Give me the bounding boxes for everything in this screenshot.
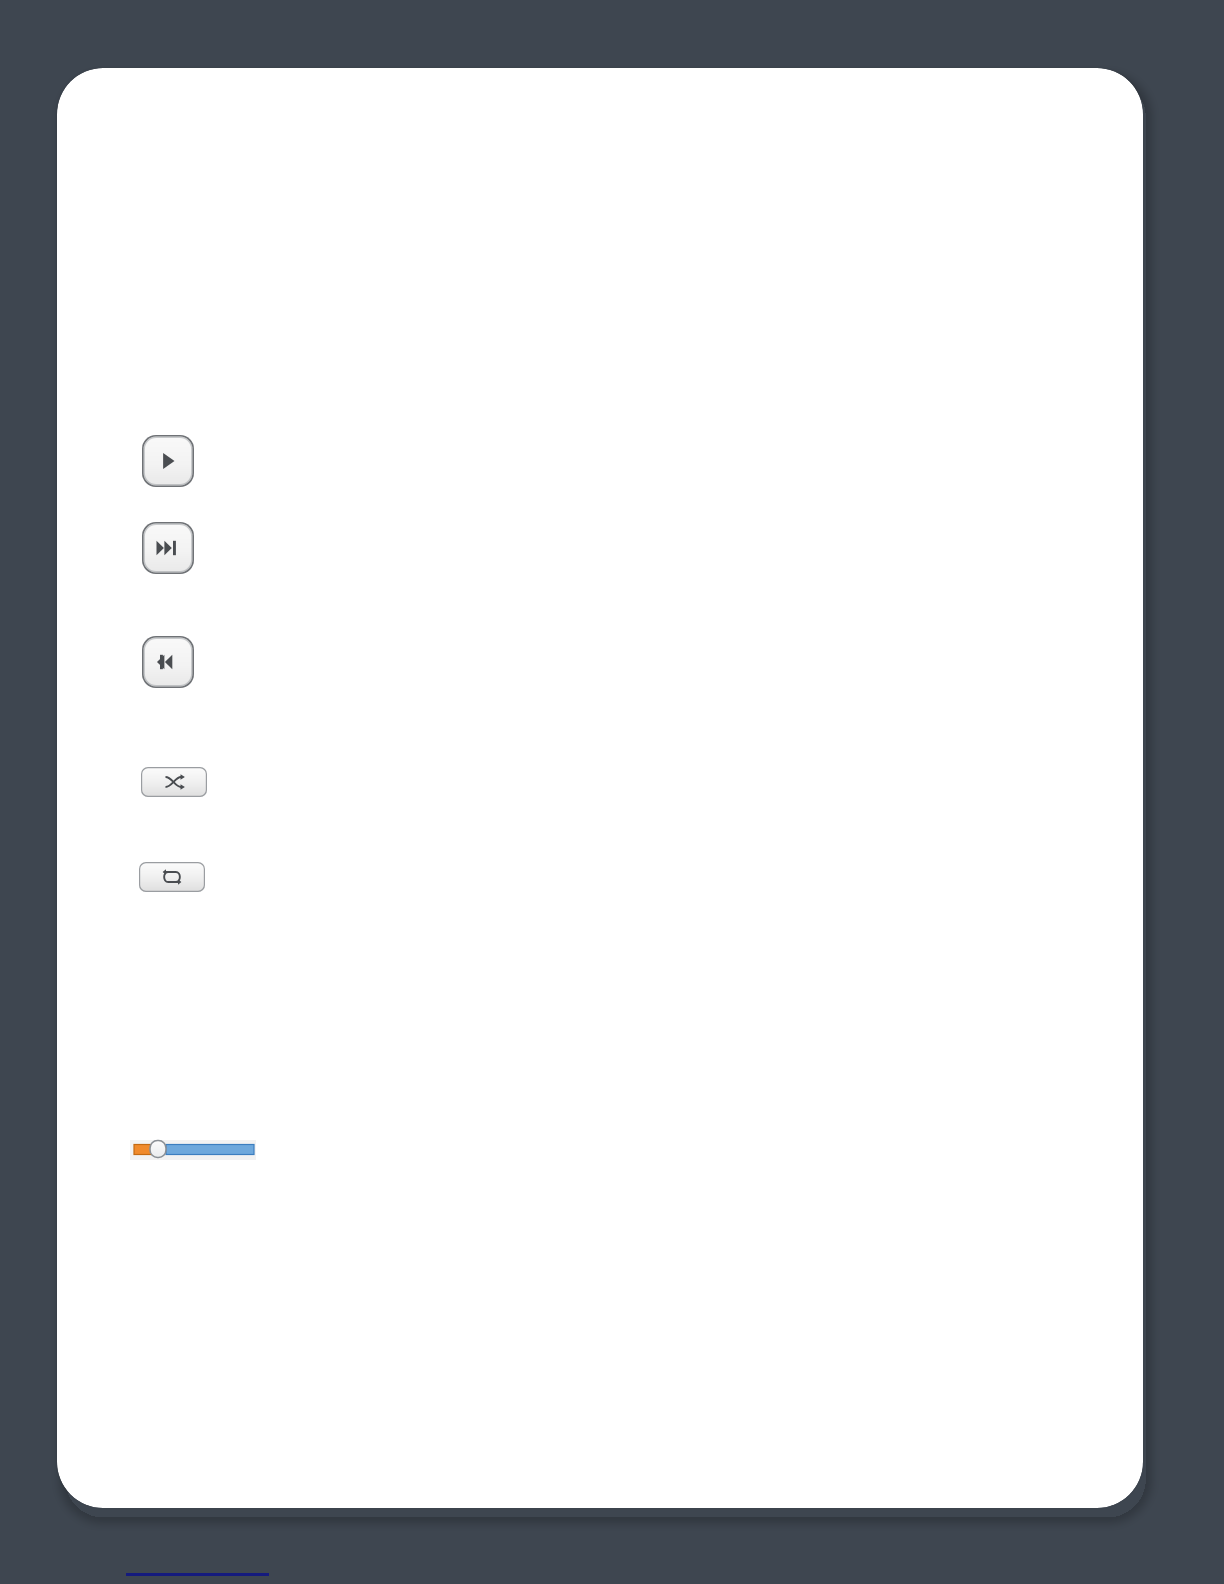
button[interactable]: Shuffle (141, 767, 207, 797)
button[interactable]: Volume (130, 1138, 256, 1162)
button[interactable]: Next track (142, 522, 194, 574)
button[interactable]: Repeat (139, 862, 205, 892)
button[interactable]: Previous track (142, 636, 194, 688)
button[interactable]: Play (142, 435, 194, 487)
